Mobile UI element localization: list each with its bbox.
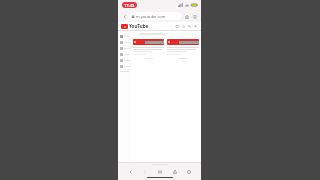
staticText: 17:48 bbox=[124, 3, 135, 8]
button[interactable] bbox=[167, 39, 199, 55]
button[interactable] bbox=[118, 51, 131, 57]
button[interactable] bbox=[118, 39, 131, 45]
button[interactable]: Search bbox=[186, 23, 192, 29]
button[interactable] bbox=[118, 57, 131, 63]
staticText: m.youtube.com bbox=[136, 14, 166, 19]
button[interactable]: Back bbox=[126, 167, 135, 176]
button[interactable]: m.youtube.com bbox=[129, 12, 181, 20]
button[interactable]: Notifications bbox=[180, 23, 186, 29]
button[interactable] bbox=[133, 39, 164, 55]
button[interactable]: Back bbox=[121, 13, 128, 20]
button[interactable]: Bookmark bbox=[191, 13, 198, 20]
button[interactable]: Tabs bbox=[184, 167, 193, 176]
staticText: YouTube bbox=[129, 23, 149, 29]
button[interactable]: Account bbox=[192, 23, 198, 29]
button[interactable]: Share page bbox=[170, 167, 179, 176]
button[interactable]: Home bbox=[155, 167, 164, 176]
button[interactable]: Forward bbox=[140, 167, 149, 176]
button[interactable]: Cast bbox=[174, 23, 180, 29]
button[interactable]: YouTube bbox=[121, 23, 149, 29]
button[interactable] bbox=[118, 63, 131, 69]
button[interactable] bbox=[118, 33, 131, 39]
button[interactable]: Share bbox=[183, 13, 190, 20]
button[interactable] bbox=[118, 45, 131, 51]
